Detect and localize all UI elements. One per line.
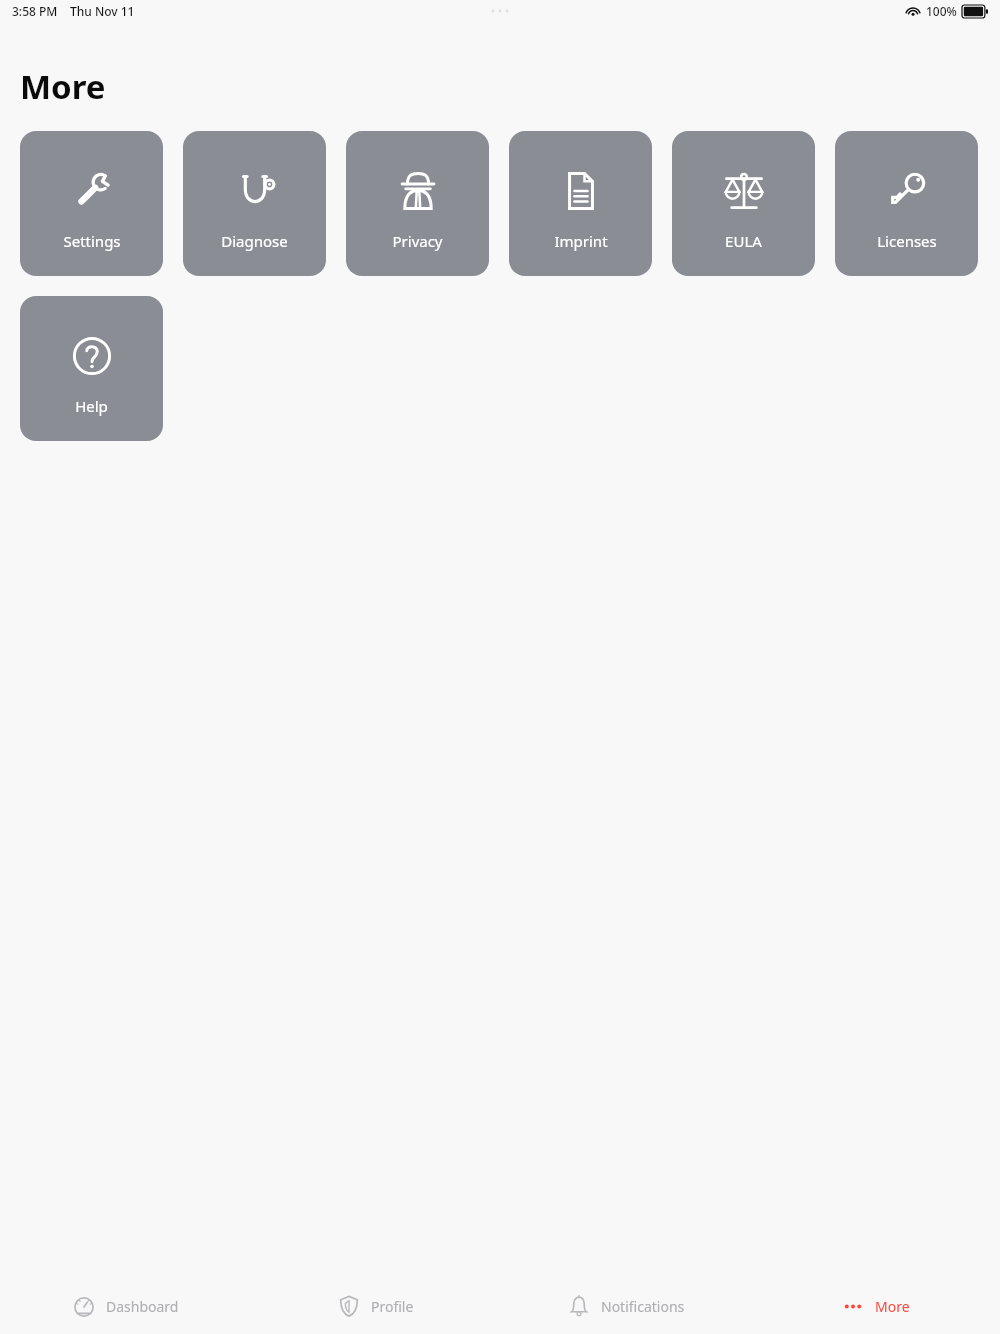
staticText: 3:58 PM [12, 3, 58, 19]
button[interactable]: Notifications [500, 1278, 750, 1334]
staticText: Help [75, 396, 108, 416]
staticText: More [20, 64, 106, 109]
staticText: Notifications [601, 1297, 685, 1316]
staticText: Profile [371, 1297, 414, 1316]
button[interactable]: Help [20, 296, 163, 441]
button[interactable]: Privacy [346, 131, 489, 276]
button[interactable]: Diagnose [183, 131, 326, 276]
staticText: Thu Nov 11 [70, 3, 135, 19]
staticText: Settings [63, 231, 121, 251]
staticText: Dashboard [106, 1297, 179, 1316]
staticText: Diagnose [221, 231, 288, 251]
staticText: EULA [725, 231, 762, 251]
staticText: Privacy [392, 231, 443, 251]
button[interactable]: Licenses [835, 131, 978, 276]
staticText: Licenses [877, 231, 937, 251]
staticText: More [875, 1297, 910, 1316]
staticText: 100% [926, 3, 957, 19]
button[interactable]: Dashboard [0, 1278, 250, 1334]
button[interactable]: Profile [250, 1278, 500, 1334]
staticText: Imprint [554, 231, 608, 251]
button[interactable]: EULA [672, 131, 815, 276]
button[interactable]: Settings [20, 131, 163, 276]
button[interactable]: More [750, 1278, 1000, 1334]
button[interactable]: Imprint [509, 131, 652, 276]
